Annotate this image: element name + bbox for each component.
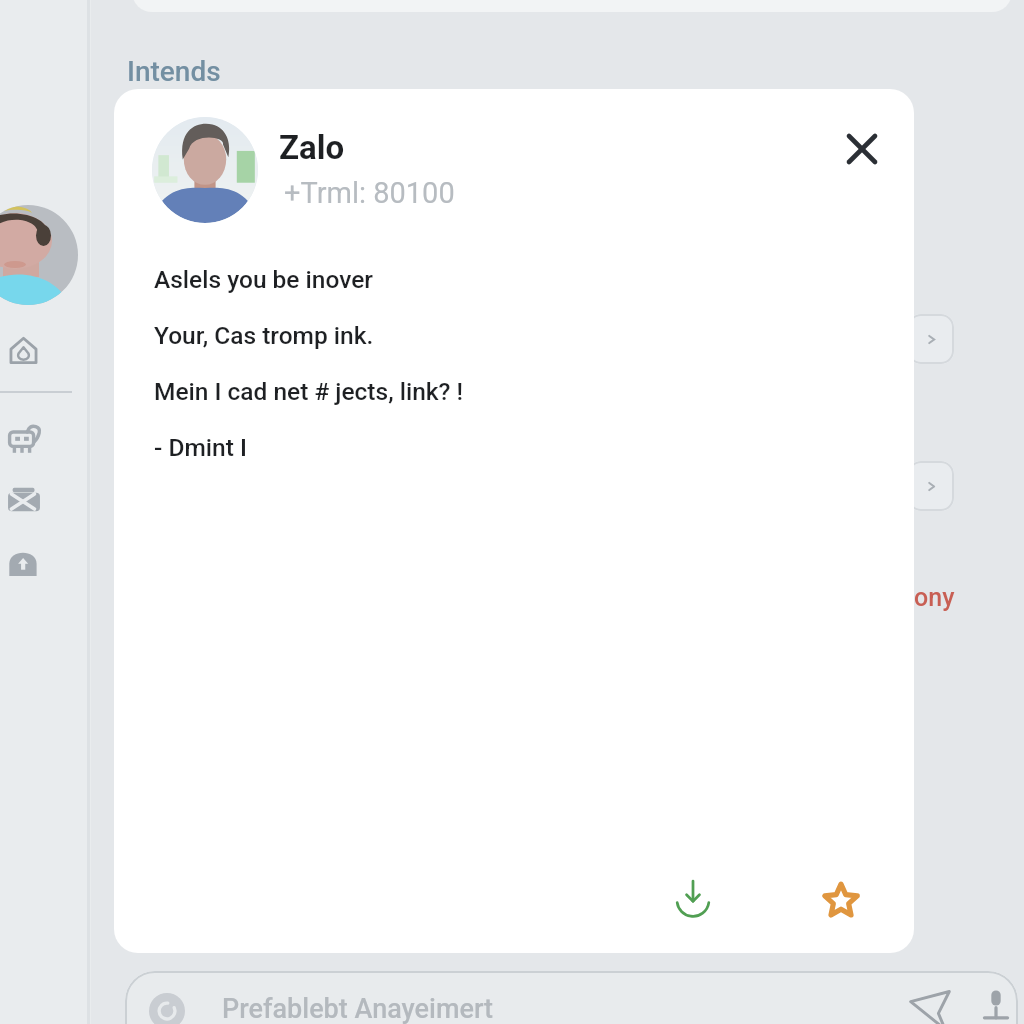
button[interactable]: Zalo: [144, 109, 704, 231]
button[interactable]: Notifications: [3, 542, 45, 584]
staticText: Intends: [127, 55, 221, 88]
staticText: Mein I cad net # jects, link? !: [154, 377, 464, 406]
button[interactable]: Mail: [3, 478, 45, 520]
staticText: +Trml: 80100: [284, 176, 455, 210]
staticText: Prefablebt Anayeimert: [222, 993, 494, 1024]
staticText: Your, Cas tromp ink.: [154, 321, 374, 350]
button[interactable]: Prefablebt Anayeimert: [125, 971, 1018, 1024]
button[interactable]: Devices: [4, 420, 44, 460]
staticText: Aslels you be inover: [154, 265, 373, 294]
staticText: Zalo: [279, 128, 345, 167]
button[interactable]: Expand: [908, 461, 954, 511]
button[interactable]: Expand: [908, 314, 954, 364]
button[interactable]: Download: [658, 862, 728, 932]
button[interactable]: Close: [828, 115, 896, 183]
button[interactable]: Home: [7, 334, 40, 367]
button[interactable]: Send: [900, 980, 960, 1024]
button[interactable]: Favorite: [806, 865, 876, 935]
button[interactable]: Microphone: [966, 977, 1024, 1024]
button[interactable]: Profile: [0, 205, 78, 305]
staticText: - Dmint I: [154, 433, 247, 462]
staticText: pony: [900, 583, 955, 612]
